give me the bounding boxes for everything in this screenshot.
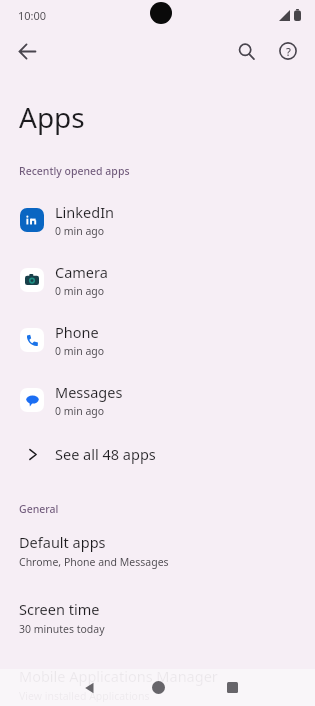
staticText: Chrome, Phone and Messages <box>19 555 169 569</box>
button[interactable]: Mobile Applications Manager <box>0 662 315 706</box>
staticText: Mobile Applications Manager <box>19 666 218 686</box>
button[interactable]: Camera <box>0 250 315 310</box>
staticText: General <box>19 502 59 516</box>
button[interactable]: See all 48 apps <box>0 430 315 478</box>
button[interactable]: Help <box>267 30 309 72</box>
staticText: 30 minutes today <box>19 622 105 636</box>
staticText: Recently opened apps <box>19 164 130 178</box>
button[interactable]: Back <box>6 30 48 72</box>
staticText: 0 min ago <box>55 224 105 238</box>
staticText: 10:00 <box>18 8 47 23</box>
button[interactable]: Home <box>138 669 178 706</box>
button[interactable]: Recent apps <box>212 669 252 706</box>
staticText: View installed Applications <box>19 689 150 702</box>
staticText: Apps <box>19 98 85 136</box>
staticText: Screen time <box>19 599 100 619</box>
staticText: ? <box>286 44 291 59</box>
staticText: Messages <box>55 382 123 402</box>
staticText: Phone <box>55 322 99 342</box>
button[interactable]: Default apps <box>0 528 315 573</box>
button[interactable]: LinkedIn <box>0 190 315 250</box>
button[interactable]: Back <box>70 669 110 706</box>
staticText: 0 min ago <box>55 404 105 418</box>
staticText: Camera <box>55 262 108 282</box>
staticText: Default apps <box>19 532 106 552</box>
staticText: LinkedIn <box>55 202 115 222</box>
staticText: See all 48 apps <box>55 444 156 464</box>
button[interactable]: Messages <box>0 370 315 430</box>
button[interactable]: Screen time <box>0 595 315 640</box>
button[interactable]: Search <box>225 30 267 72</box>
staticText: 0 min ago <box>55 344 105 358</box>
staticText: 0 min ago <box>55 284 105 298</box>
button[interactable]: Phone <box>0 310 315 370</box>
